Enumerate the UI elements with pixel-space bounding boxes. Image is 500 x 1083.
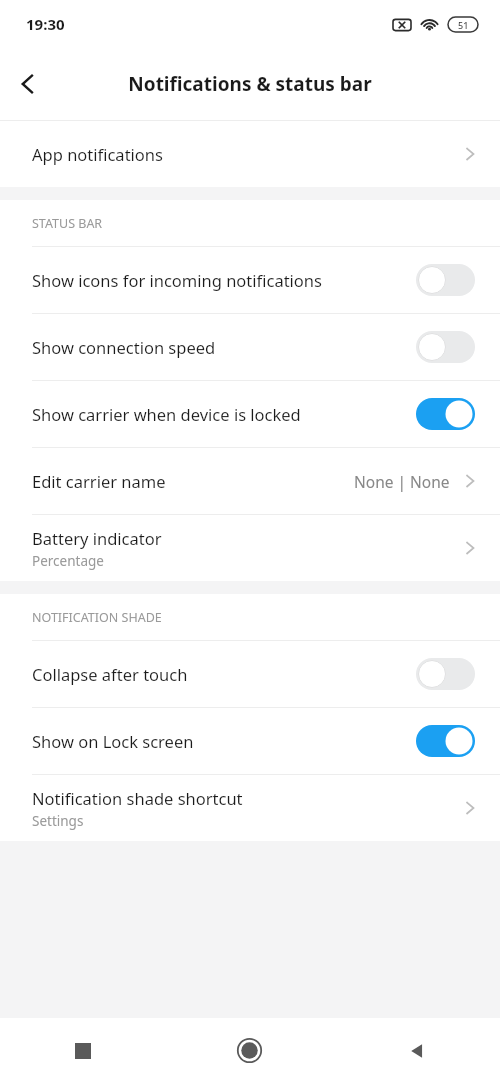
staticText: Show icons for incoming notifications bbox=[32, 269, 416, 291]
staticText: NOTIFICATION SHADE bbox=[32, 609, 162, 626]
button[interactable]: Show icons for incoming notifications bbox=[0, 247, 500, 313]
staticText: 19:30 bbox=[26, 14, 65, 34]
button[interactable]: Home bbox=[166, 1018, 333, 1083]
button[interactable]: Battery indicator bbox=[0, 515, 500, 581]
staticText: None | None bbox=[354, 471, 450, 492]
staticText: Settings bbox=[32, 812, 84, 830]
button[interactable]: Edit carrier name bbox=[0, 448, 500, 514]
staticText: Collapse after touch bbox=[32, 663, 416, 685]
button[interactable]: Show carrier when device is locked bbox=[0, 381, 500, 447]
staticText: Show carrier when device is locked bbox=[32, 403, 416, 425]
staticText: 51 bbox=[458, 19, 469, 31]
button[interactable]: Show on Lock screen bbox=[0, 708, 500, 774]
button[interactable]: Collapse after touch bbox=[0, 641, 500, 707]
staticText: Show connection speed bbox=[32, 336, 416, 358]
staticText: Percentage bbox=[32, 552, 104, 570]
button[interactable]: Back bbox=[333, 1018, 500, 1083]
button[interactable]: Recents bbox=[0, 1018, 166, 1083]
staticText: STATUS BAR bbox=[32, 215, 103, 232]
staticText: Show on Lock screen bbox=[32, 730, 416, 752]
button[interactable]: Show connection speed bbox=[0, 314, 500, 380]
staticText: Battery indicator bbox=[32, 527, 162, 549]
button[interactable]: Notification shade shortcut bbox=[0, 775, 500, 841]
staticText: Notification shade shortcut bbox=[32, 787, 243, 809]
button[interactable]: Back bbox=[0, 56, 56, 112]
staticText: App notifications bbox=[32, 143, 163, 165]
button[interactable]: App notifications bbox=[0, 121, 500, 187]
staticText: Notifications & status bar bbox=[128, 71, 372, 97]
staticText: Edit carrier name bbox=[32, 470, 166, 492]
